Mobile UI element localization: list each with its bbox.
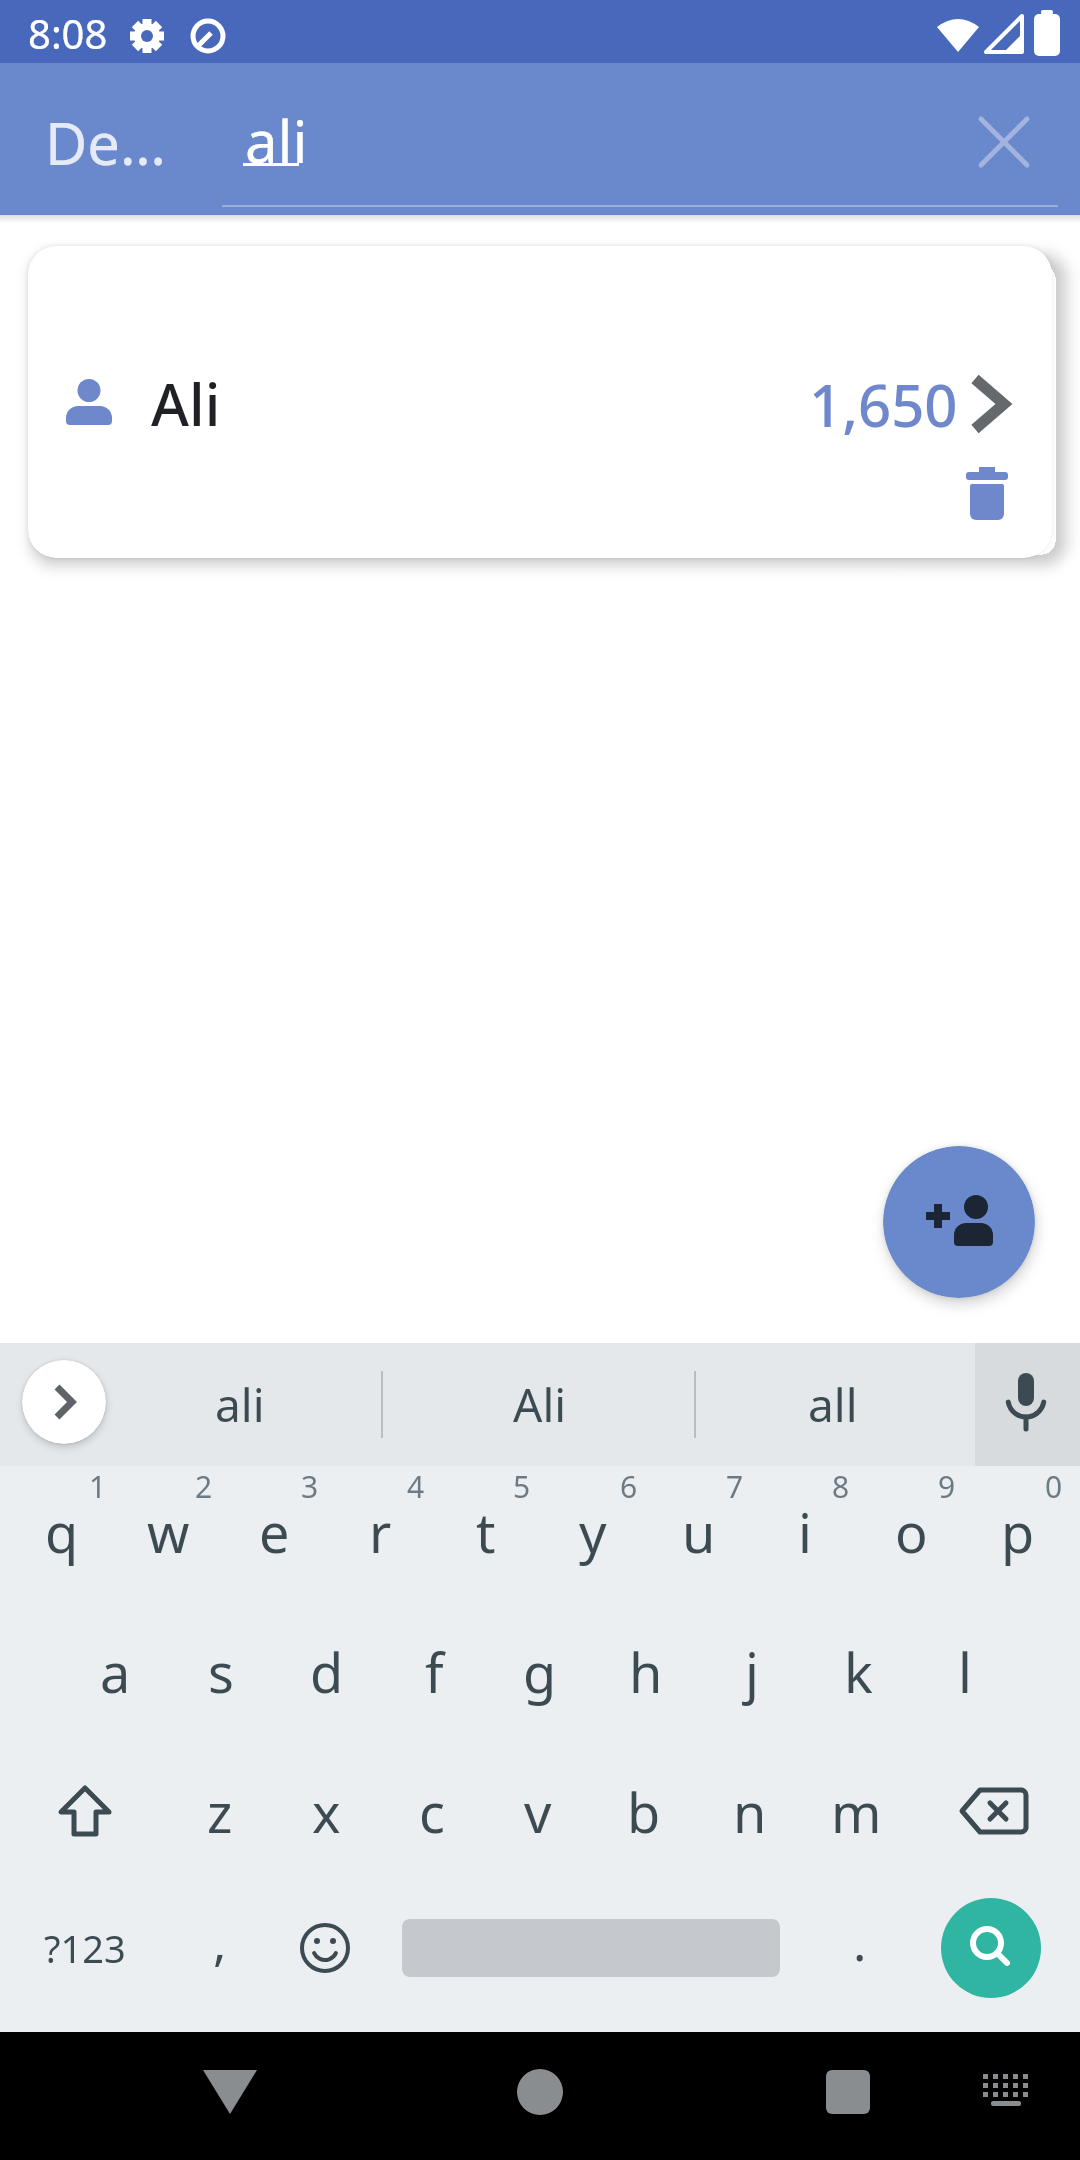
staticText: u [682, 1495, 716, 1569]
staticText: De… [45, 103, 166, 182]
staticText: m [831, 1775, 882, 1849]
staticText: k [844, 1635, 873, 1709]
staticText: l [958, 1635, 972, 1709]
staticText: a [100, 1635, 131, 1709]
button[interactable] [299, 1922, 351, 1974]
button[interactable] [22, 1360, 106, 1444]
staticText: y [579, 1495, 607, 1569]
button[interactable]: x [281, 1758, 371, 1866]
button[interactable]: g [495, 1618, 585, 1726]
button[interactable]: t [441, 1478, 531, 1586]
button[interactable]: z [175, 1758, 265, 1866]
staticText: 8:08 [28, 6, 108, 60]
staticText: e [259, 1495, 290, 1569]
button[interactable] [883, 1146, 1035, 1298]
button[interactable] [960, 1788, 1028, 1836]
staticText: 0 [1045, 1466, 1063, 1507]
staticText: o [895, 1495, 928, 1569]
button[interactable]: k [813, 1618, 903, 1726]
staticText: w [147, 1495, 190, 1569]
button[interactable]: . [830, 1892, 890, 1992]
button[interactable]: Ali [28, 246, 1052, 558]
staticText: i [798, 1495, 812, 1569]
button[interactable] [976, 114, 1032, 170]
button[interactable] [941, 1898, 1041, 1998]
staticText: 9 [938, 1466, 956, 1507]
button[interactable]: ali [141, 1358, 339, 1450]
button[interactable]: a [70, 1618, 160, 1726]
staticText: all [808, 1373, 858, 1436]
staticText: 8 [832, 1466, 850, 1507]
button[interactable] [966, 467, 1008, 523]
button[interactable]: c [387, 1758, 477, 1866]
staticText: v [524, 1775, 552, 1849]
staticText: r [369, 1495, 392, 1569]
staticText: ali [215, 1373, 265, 1436]
staticText: 6 [620, 1466, 638, 1507]
button[interactable]: b [599, 1758, 689, 1866]
button[interactable]: d [282, 1618, 372, 1726]
staticText: . [853, 1908, 867, 1976]
button[interactable]: h [601, 1618, 691, 1726]
staticText: s [208, 1635, 234, 1709]
staticText: , [213, 1908, 227, 1976]
staticText: d [310, 1635, 344, 1709]
button[interactable] [826, 2070, 870, 2114]
staticText: j [745, 1635, 759, 1709]
button[interactable]: ?123 [25, 1910, 145, 1986]
staticText: n [733, 1775, 767, 1849]
button[interactable]: Ali [441, 1358, 639, 1450]
staticText: g [523, 1635, 557, 1709]
button[interactable] [57, 1786, 113, 1838]
staticText: Ali [151, 364, 221, 443]
staticText: t [476, 1495, 496, 1569]
button[interactable]: w [123, 1478, 213, 1586]
button[interactable]: o [866, 1478, 956, 1586]
staticText: 3 [301, 1466, 319, 1507]
staticText: p [1001, 1495, 1035, 1569]
staticText: 2 [195, 1466, 213, 1507]
button[interactable]: all [734, 1358, 932, 1450]
staticText: 1 [89, 1466, 107, 1507]
button[interactable]: m [811, 1758, 901, 1866]
staticText: Ali [513, 1373, 567, 1436]
staticText: f [425, 1635, 444, 1709]
staticText: x [312, 1775, 341, 1849]
button[interactable]: v [493, 1758, 583, 1866]
staticText: b [627, 1775, 661, 1849]
button[interactable]: j [707, 1618, 797, 1726]
staticText: 7 [726, 1466, 744, 1507]
button[interactable]: p [973, 1478, 1063, 1586]
staticText: c [419, 1775, 445, 1849]
button[interactable]: f [389, 1618, 479, 1726]
staticText: z [207, 1775, 233, 1849]
button[interactable]: y [548, 1478, 638, 1586]
button[interactable] [517, 2069, 563, 2115]
button[interactable]: r [335, 1478, 425, 1586]
staticText: 1,650 [809, 365, 958, 444]
staticText: ?123 [44, 1922, 126, 1974]
button[interactable] [971, 376, 1011, 434]
staticText: h [629, 1635, 663, 1709]
staticText: ali [245, 101, 308, 180]
button[interactable]: , [190, 1892, 250, 1992]
button[interactable]: e [229, 1478, 319, 1586]
button[interactable]: q [17, 1478, 107, 1586]
button[interactable] [980, 2072, 1032, 2112]
button[interactable] [975, 1343, 1080, 1466]
staticText: 5 [513, 1466, 531, 1507]
button[interactable]: l [920, 1618, 1010, 1726]
button[interactable]: u [654, 1478, 744, 1586]
button[interactable]: i [760, 1478, 850, 1586]
button[interactable]: n [705, 1758, 795, 1866]
staticText: 4 [407, 1466, 425, 1507]
button[interactable]: s [176, 1618, 266, 1726]
staticText: q [45, 1495, 79, 1569]
button[interactable] [203, 2068, 257, 2116]
